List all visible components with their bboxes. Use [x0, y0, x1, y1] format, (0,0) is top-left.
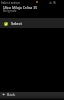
staticText: Back [7, 92, 16, 97]
staticText: Ulica Milaja Celica 35 [3, 5, 38, 10]
button[interactable]: Back [0, 92, 19, 97]
staticText: Belgrade [3, 9, 17, 13]
button[interactable]: Select [0, 18, 64, 28]
other: Back [2, 93, 5, 96]
staticText: Select action [1, 1, 20, 5]
staticText: Select [11, 21, 22, 26]
